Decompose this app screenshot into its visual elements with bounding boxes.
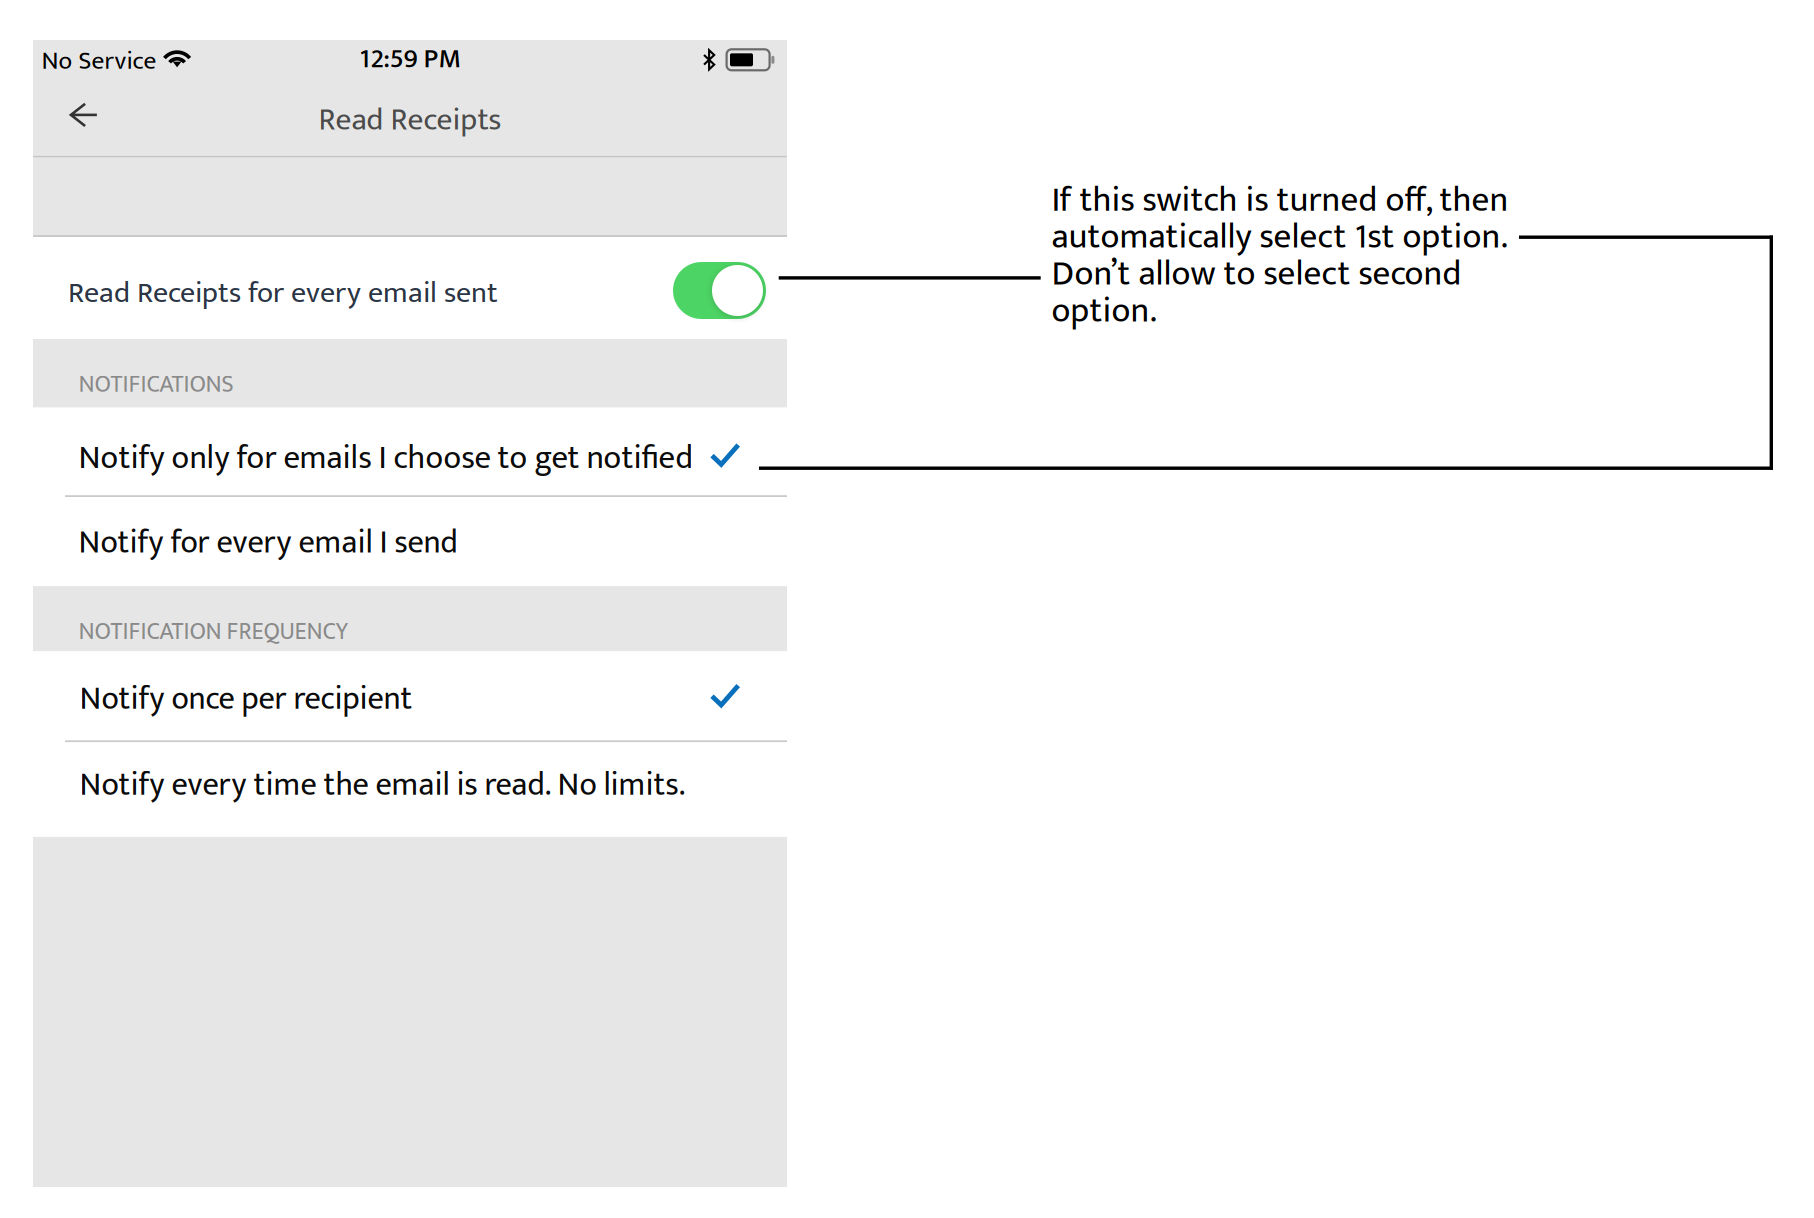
staticText: 12:59 PM — [359, 36, 460, 82]
staticText: Notify once per recipient — [80, 672, 413, 726]
staticText: Read Receipts — [318, 94, 501, 146]
button[interactable]: Notify once per recipient — [33, 651, 787, 740]
staticText: No Service — [41, 40, 156, 82]
staticText: Notify for every email I send — [78, 516, 457, 570]
staticText: Notify only for emails I choose to get n… — [78, 431, 693, 485]
staticText: Read Receipts for every email sent — [68, 268, 498, 318]
staticText: automatically select 1st option. — [1052, 208, 1508, 266]
button[interactable]: Notify only for emails I choose to get n… — [33, 407, 787, 495]
staticText: If this switch is turned off, then — [1052, 171, 1509, 229]
button[interactable]: Notify for every email I send — [33, 497, 787, 586]
staticText: Don’t allow to select second — [1052, 245, 1462, 303]
staticText: NOTIFICATION FREQUENCY — [79, 612, 349, 652]
button[interactable]: Read Receipts for every email sent — [673, 262, 766, 319]
button[interactable]: Back — [56, 93, 112, 137]
staticText: NOTIFICATIONS — [79, 365, 234, 404]
staticText: option. — [1052, 282, 1157, 340]
button[interactable]: Notify every time the email is read. No … — [33, 742, 787, 837]
staticText: Notify every time the email is read. No … — [80, 758, 686, 812]
